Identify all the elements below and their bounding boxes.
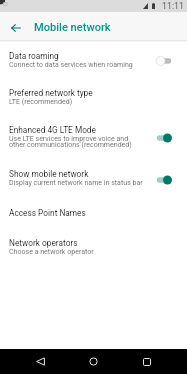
button[interactable]: Access Point Names [0,199,187,229]
staticText: Enhanced 4G LTE Mode [9,126,96,134]
staticText: Preferred network type [9,89,93,97]
staticText: Access Point Names [9,209,86,217]
button[interactable]: Show mobile network [0,160,187,199]
staticText: Connect to data services when roaming [9,60,133,68]
button[interactable]: Network operators [0,229,187,266]
button[interactable]: Data roaming [0,42,187,79]
staticText: 11:11 [162,1,184,11]
button[interactable]: Home [81,349,106,374]
button[interactable]: Preferred network type [0,79,187,116]
staticText: Mobile network [34,21,111,34]
staticText: Choose a network operator [9,247,94,255]
button[interactable]: Recent apps [134,349,159,374]
button[interactable]: Enhanced 4G LTE Mode [0,116,187,160]
staticText: Display current network name in status b… [9,178,143,186]
staticText: Show mobile network [9,170,89,178]
staticText: LTE (recommended) [9,97,73,105]
button[interactable]: Navigate up [1,15,30,40]
button[interactable]: Back [28,349,53,374]
staticText: Network operators [9,239,78,247]
staticText: Data roaming [9,52,59,60]
staticText: Use LTE services to improve voice and ot… [9,134,145,149]
